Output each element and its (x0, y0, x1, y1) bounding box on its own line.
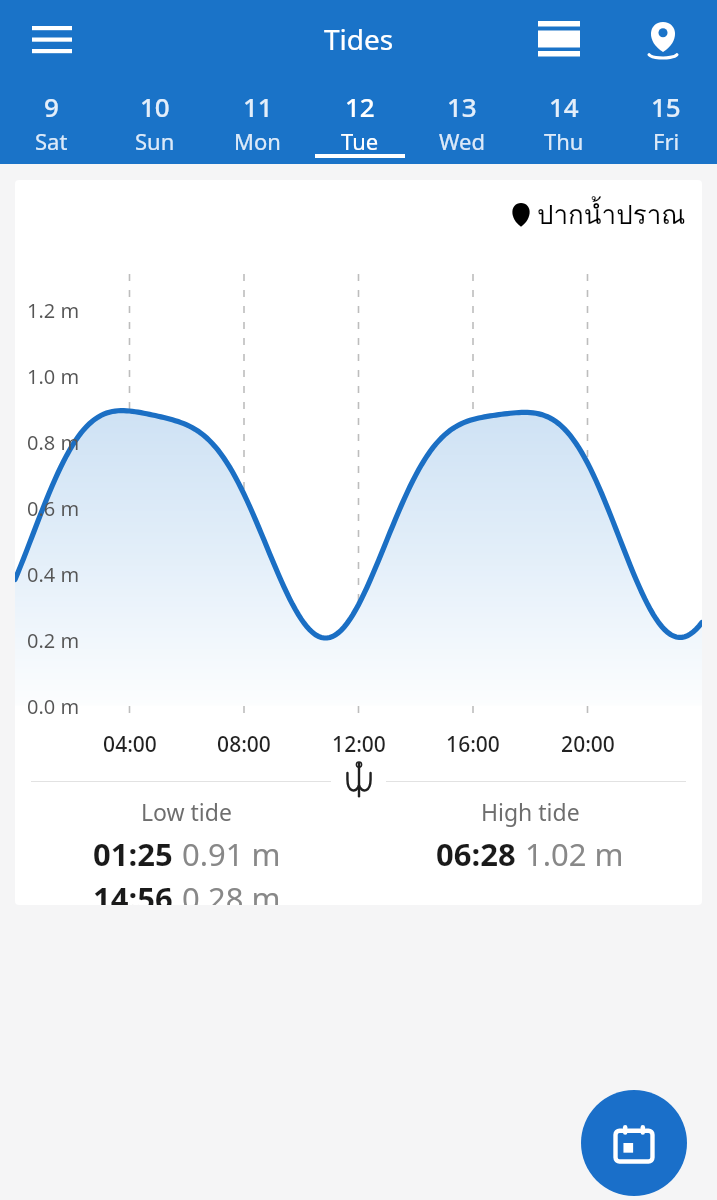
button[interactable]: 11 (206, 80, 309, 164)
staticText: 0.28 m (182, 877, 281, 905)
staticText: 0.91 m (182, 833, 281, 875)
staticText: 1.0 m (27, 363, 80, 390)
staticText: Fri (653, 126, 680, 156)
staticText: High tide (481, 796, 580, 827)
staticText: 06:28 (436, 833, 516, 875)
staticText: 0.8 m (27, 429, 80, 456)
button[interactable]: 10 (103, 80, 206, 164)
staticText: 01:25 (93, 833, 173, 875)
staticText: 1.2 m (27, 297, 80, 324)
staticText: 9 (44, 89, 59, 124)
staticText: 1.02 m (525, 833, 624, 875)
button[interactable]: Low tide (15, 796, 358, 905)
staticText: 0.6 m (27, 495, 80, 522)
staticText: 08:00 (217, 730, 271, 759)
button[interactable]: Show tide table (525, 12, 593, 68)
staticText: Low tide (141, 796, 232, 827)
staticText: 0.4 m (27, 561, 80, 588)
button[interactable]: Open navigation menu (18, 12, 86, 68)
button[interactable]: High tide (358, 796, 702, 877)
staticText: Tides (324, 20, 394, 58)
button[interactable]: 12 (309, 80, 411, 164)
button[interactable]: 15 (615, 80, 717, 164)
button[interactable]: ปากน้ำปราณ (511, 194, 686, 235)
staticText: Tue (341, 126, 379, 156)
staticText: 14 (549, 89, 579, 124)
staticText: 13 (447, 89, 477, 124)
staticText: 04:00 (103, 730, 157, 759)
staticText: 11 (243, 89, 273, 124)
staticText: 12 (345, 89, 375, 124)
staticText: Sat (35, 126, 68, 156)
staticText: ปากน้ำปราณ (537, 194, 686, 235)
button[interactable]: 13 (411, 80, 513, 164)
button[interactable]: Choose location (629, 12, 697, 68)
staticText: 16:00 (446, 730, 500, 759)
staticText: 12:00 (332, 730, 386, 759)
staticText: Wed (439, 126, 485, 156)
staticText: 0.0 m (27, 693, 80, 720)
button[interactable]: 14 (513, 80, 615, 164)
staticText: Thu (544, 126, 584, 156)
staticText: 15 (651, 89, 681, 124)
staticText: 14:56 (93, 877, 173, 905)
staticText: 20:00 (561, 730, 615, 759)
staticText: 10 (140, 89, 170, 124)
button[interactable]: Pick a date (581, 1090, 687, 1196)
staticText: 0.2 m (27, 627, 80, 654)
staticText: Sun (135, 126, 175, 156)
staticText: Mon (234, 126, 281, 156)
button[interactable]: 9 (0, 80, 103, 164)
